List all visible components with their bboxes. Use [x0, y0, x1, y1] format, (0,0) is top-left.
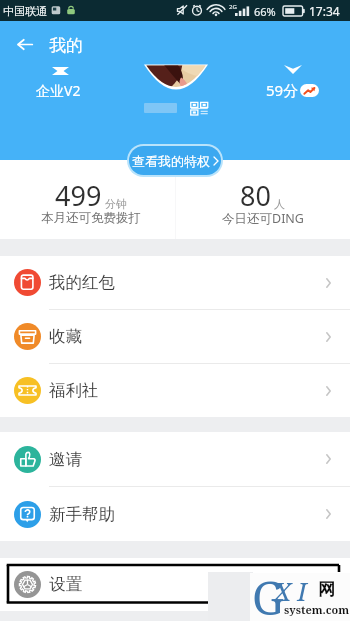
- button[interactable]: 59分: [266, 80, 319, 100]
- staticText: system.com: [284, 602, 350, 617]
- staticText: 我的: [49, 35, 83, 56]
- staticText: 收藏: [49, 326, 82, 347]
- button[interactable]: 新手帮助: [0, 487, 350, 541]
- button[interactable]: 企业V2: [30, 64, 90, 100]
- staticText: 59分: [266, 80, 299, 100]
- staticText: 2G: [229, 3, 237, 11]
- staticText: 80: [240, 177, 271, 214]
- staticText: 新手帮助: [49, 504, 115, 525]
- staticText: 企业V2: [36, 81, 81, 100]
- staticText: 网: [318, 579, 335, 600]
- staticText: 邀请: [49, 449, 82, 470]
- staticText: 本月还可免费拨打: [41, 210, 141, 226]
- staticText: XI: [274, 573, 313, 608]
- staticText: 17:34: [309, 3, 340, 19]
- button[interactable]: 设置: [0, 558, 350, 611]
- staticText: 查看我的特权: [132, 153, 210, 169]
- staticText: 福利社: [49, 380, 99, 401]
- staticText: 我的红包: [49, 272, 115, 293]
- staticText: 中国联通: [3, 4, 47, 18]
- staticText: 设置: [49, 574, 82, 595]
- button[interactable]: 499: [3, 160, 178, 239]
- staticText: 499: [55, 177, 102, 214]
- button[interactable]: 收藏: [0, 310, 350, 363]
- button[interactable]: 我的红包: [0, 256, 350, 309]
- button[interactable]: Avatar: [144, 64, 208, 90]
- staticText: 分钟: [105, 197, 127, 211]
- button[interactable]: 福利社: [0, 364, 350, 417]
- button[interactable]: 80: [175, 160, 350, 239]
- button[interactable]: 邀请: [0, 432, 350, 486]
- button[interactable]: Back: [7, 27, 41, 61]
- staticText: 人: [274, 197, 285, 211]
- button[interactable]: QR code: [190, 102, 209, 115]
- button[interactable]: 查看我的特权: [129, 146, 221, 175]
- staticText: 66%: [254, 4, 276, 19]
- staticText: G: [252, 567, 285, 615]
- staticText: 今日还可DING: [222, 210, 304, 227]
